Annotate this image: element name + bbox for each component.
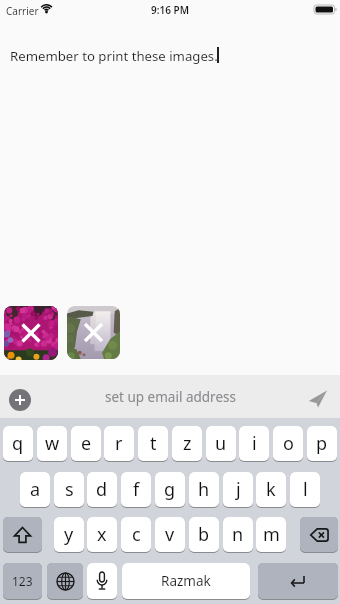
button[interactable]: d: [87, 472, 117, 508]
button[interactable]: i: [239, 426, 269, 462]
button[interactable]: r: [104, 426, 134, 462]
button[interactable]: j: [223, 472, 253, 508]
staticText: x: [97, 522, 107, 547]
staticText: t: [150, 431, 157, 456]
staticText: s: [65, 477, 74, 502]
button[interactable]: b: [189, 517, 219, 553]
staticText: 9:16 PM: [151, 3, 189, 17]
button[interactable]: t: [138, 426, 168, 462]
button[interactable]: q: [3, 426, 33, 462]
button[interactable]: [87, 563, 117, 600]
staticText: 123: [12, 573, 33, 589]
button[interactable]: v: [155, 517, 185, 553]
staticText: p: [316, 431, 328, 456]
button[interactable]: [308, 389, 328, 409]
staticText: i: [252, 431, 257, 456]
button[interactable]: e: [71, 426, 101, 462]
button[interactable]: y: [54, 517, 84, 553]
staticText: a: [30, 477, 41, 502]
staticText: m: [263, 522, 280, 547]
button[interactable]: [67, 306, 120, 359]
staticText: q: [12, 431, 24, 456]
staticText: v: [165, 522, 175, 547]
staticText: r: [115, 431, 123, 456]
staticText: k: [266, 477, 276, 502]
button[interactable]: m: [256, 517, 286, 553]
button[interactable]: f: [121, 472, 151, 508]
button[interactable]: u: [206, 426, 236, 462]
button[interactable]: [47, 563, 83, 600]
staticText: j: [236, 477, 241, 502]
staticText: f: [133, 477, 140, 502]
button[interactable]: l: [290, 472, 320, 508]
staticText: g: [164, 477, 176, 502]
button[interactable]: n: [223, 517, 253, 553]
staticText: h: [198, 477, 210, 502]
staticText: o: [283, 431, 294, 456]
staticText: y: [64, 522, 74, 547]
button[interactable]: Razmak: [122, 563, 250, 600]
button[interactable]: [9, 389, 31, 411]
staticText: Carrier: [6, 4, 39, 18]
button[interactable]: c: [121, 517, 151, 553]
button[interactable]: s: [54, 472, 84, 508]
button[interactable]: z: [172, 426, 202, 462]
staticText: e: [81, 431, 92, 456]
button[interactable]: [258, 563, 338, 600]
staticText: w: [45, 431, 60, 456]
staticText: u: [215, 431, 227, 456]
button[interactable]: [3, 517, 42, 553]
button[interactable]: k: [256, 472, 286, 508]
button[interactable]: x: [87, 517, 117, 553]
staticText: Razmak: [161, 572, 211, 590]
staticText: n: [232, 522, 244, 547]
button[interactable]: o: [273, 426, 303, 462]
staticText: l: [303, 477, 308, 502]
button[interactable]: [300, 517, 338, 553]
staticText: b: [198, 522, 210, 547]
button[interactable]: a: [20, 472, 50, 508]
staticText: set up email address: [105, 388, 236, 406]
button[interactable]: h: [189, 472, 219, 508]
staticText: c: [132, 522, 141, 547]
button[interactable]: 123: [3, 563, 42, 600]
button[interactable]: [4, 306, 58, 360]
button[interactable]: g: [155, 472, 185, 508]
staticText: Remember to print these images.: [10, 47, 218, 65]
button[interactable]: w: [37, 426, 67, 462]
button[interactable]: p: [307, 426, 337, 462]
staticText: z: [183, 431, 192, 456]
staticText: d: [96, 477, 108, 502]
